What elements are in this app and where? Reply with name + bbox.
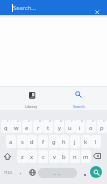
button[interactable]: IN · EN xyxy=(38,168,77,178)
staticText: p xyxy=(100,124,104,132)
staticText: Search... xyxy=(13,4,37,12)
staticText: r xyxy=(37,124,40,132)
staticText: l xyxy=(95,138,97,146)
staticText: s xyxy=(21,138,24,146)
button[interactable] xyxy=(3,153,12,160)
button[interactable]: m xyxy=(81,150,91,163)
button[interactable]: h xyxy=(59,135,69,148)
button[interactable] xyxy=(18,88,45,110)
staticText: ?123 xyxy=(4,170,12,175)
button[interactable]: f xyxy=(38,135,48,148)
staticText: 0 xyxy=(103,120,105,123)
button[interactable] xyxy=(95,10,99,14)
button[interactable]: v xyxy=(49,150,59,163)
button[interactable] xyxy=(66,88,92,110)
staticText: i xyxy=(79,124,81,132)
button[interactable] xyxy=(93,153,101,159)
staticText: j xyxy=(74,138,76,146)
staticText: h xyxy=(62,138,66,146)
button[interactable]: e xyxy=(22,120,32,133)
staticText: e xyxy=(25,124,29,132)
button[interactable]: q xyxy=(1,120,11,133)
staticText: a xyxy=(9,138,13,146)
button[interactable]: l xyxy=(91,135,101,148)
staticText: 5 xyxy=(49,120,51,123)
staticText: b xyxy=(62,153,66,161)
button[interactable]: p xyxy=(97,120,107,133)
button[interactable]: n xyxy=(70,150,80,163)
button[interactable]: , xyxy=(16,166,26,179)
staticText: g xyxy=(52,138,56,146)
button[interactable]: a xyxy=(6,135,16,148)
staticText: 4 xyxy=(39,120,41,123)
staticText: f xyxy=(42,138,44,146)
button[interactable]: ?123 xyxy=(0,166,16,179)
button[interactable]: g xyxy=(49,135,59,148)
button[interactable]: k xyxy=(81,135,91,148)
button[interactable]: z xyxy=(17,150,27,163)
staticText: y xyxy=(58,124,61,132)
staticText: 2 xyxy=(17,120,19,123)
staticText: d xyxy=(30,138,34,146)
staticText: , xyxy=(20,168,22,176)
button[interactable]: c xyxy=(38,150,48,163)
button[interactable]: w xyxy=(11,120,21,133)
staticText: x xyxy=(30,153,34,161)
staticText: n xyxy=(73,153,77,161)
staticText: t xyxy=(47,124,50,132)
staticText: IN · EN xyxy=(53,172,62,175)
button[interactable] xyxy=(79,166,90,179)
staticText: Library xyxy=(25,104,38,109)
staticText: w xyxy=(14,124,19,132)
button[interactable]: Search... xyxy=(0,0,107,15)
staticText: m xyxy=(83,153,89,161)
staticText: u xyxy=(68,124,72,132)
staticText: q xyxy=(4,124,8,132)
staticText: 9 xyxy=(92,120,94,123)
button[interactable]: x xyxy=(27,150,37,163)
button[interactable]: d xyxy=(27,135,37,148)
staticText: c xyxy=(42,153,45,161)
staticText: 1 xyxy=(7,120,9,123)
staticText: 3 xyxy=(28,120,30,123)
staticText: z xyxy=(21,153,24,161)
staticText: 7 xyxy=(71,120,73,123)
button[interactable]: r xyxy=(33,120,43,133)
button[interactable]: t xyxy=(43,120,53,133)
button[interactable]: y xyxy=(54,120,64,133)
staticText: Search xyxy=(73,104,85,109)
button[interactable]: i xyxy=(75,120,85,133)
staticText: 6 xyxy=(60,120,62,123)
staticText: v xyxy=(53,153,56,161)
staticText: o xyxy=(89,124,93,132)
button[interactable]: o xyxy=(86,120,96,133)
staticText: 8 xyxy=(81,120,83,123)
button[interactable]: j xyxy=(70,135,80,148)
button[interactable]: s xyxy=(17,135,27,148)
staticText: k xyxy=(84,138,88,146)
button[interactable] xyxy=(29,169,36,176)
button[interactable] xyxy=(90,166,102,178)
button[interactable]: b xyxy=(59,150,69,163)
button[interactable]: u xyxy=(65,120,75,133)
